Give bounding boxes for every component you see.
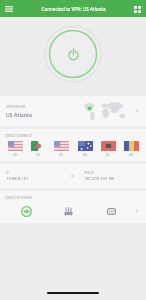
staticText: QUICK CONNECT <box>5 133 33 138</box>
button[interactable]: DZ <box>28 141 48 157</box>
button[interactable]: AD <box>121 141 141 157</box>
button[interactable]: VPN SERVER <box>0 96 146 126</box>
staticText: DZ <box>36 153 40 157</box>
staticText: AU <box>83 153 88 157</box>
staticText: VPN SERVER <box>6 104 26 109</box>
button[interactable]: US <box>5 141 25 157</box>
button[interactable]: Apps grid <box>130 2 144 16</box>
staticText: US Atlanta <box>6 111 32 118</box>
staticText: AL <box>106 153 110 157</box>
button[interactable]: Ad blocker <box>90 204 133 218</box>
button[interactable]: Kill switch <box>5 204 47 218</box>
button[interactable]: Router setup <box>47 204 90 218</box>
staticText: 10.88.8.101 <box>6 176 29 182</box>
button[interactable]: Open navigation menu <box>2 2 16 16</box>
staticText: AD <box>129 153 134 157</box>
staticText: Connected to VPN: US Atlanta <box>41 6 106 12</box>
button[interactable]: IP <box>0 164 146 188</box>
staticText: IP <box>6 171 10 175</box>
button[interactable]: AU <box>75 141 95 157</box>
staticText: QUICK SETTINGS <box>5 195 33 200</box>
staticText: VPN IP <box>84 171 95 175</box>
button[interactable]: US <box>51 141 71 157</box>
staticText: US <box>59 153 63 157</box>
button[interactable]: AL <box>98 141 118 157</box>
staticText: 181.215.101.98 <box>84 176 114 182</box>
button[interactable]: Disconnect VPN power button <box>44 25 102 83</box>
staticText: US <box>13 153 17 157</box>
